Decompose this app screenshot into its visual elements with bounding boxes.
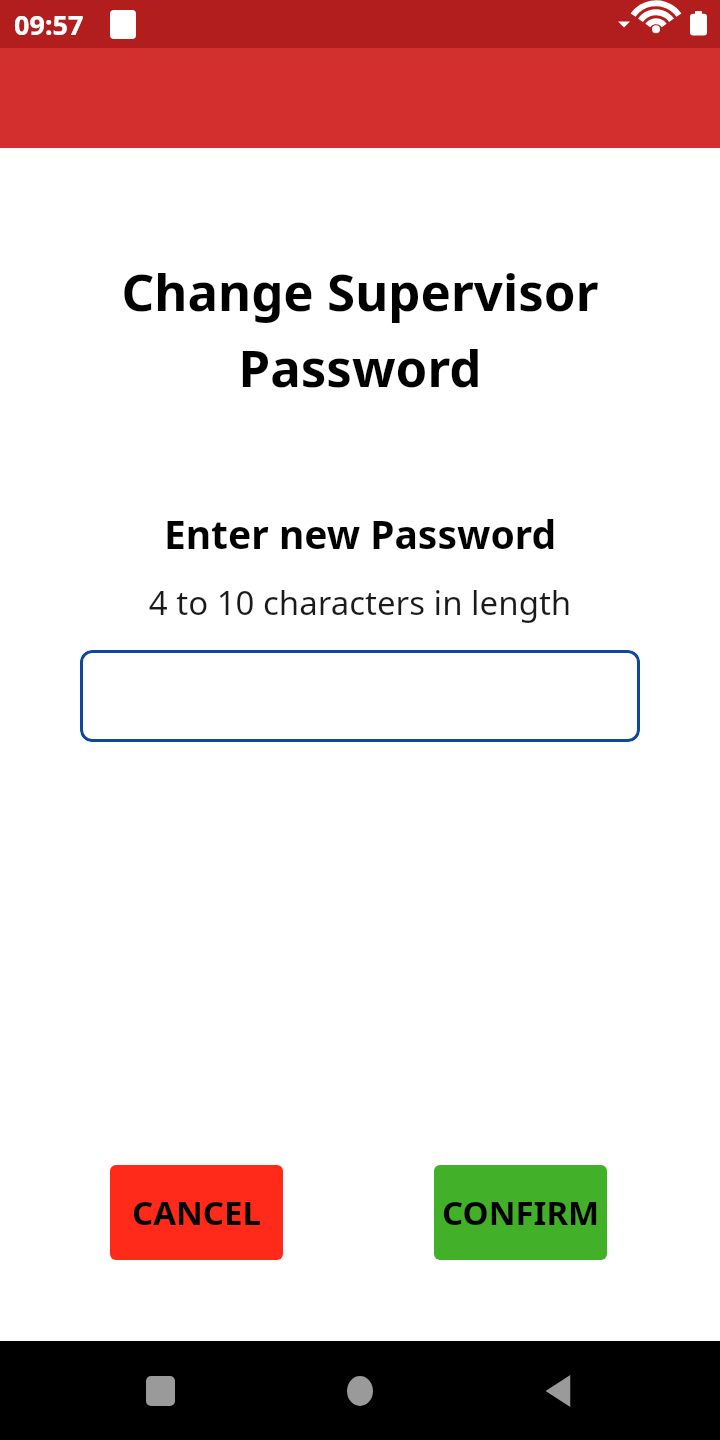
staticText: 09:57 (14, 6, 84, 43)
staticText: 4 to 10 characters in length (0, 580, 720, 625)
button[interactable]: New password field (80, 650, 640, 742)
button[interactable]: CANCEL (110, 1165, 283, 1260)
button[interactable]: Recents (120, 1351, 200, 1431)
button[interactable]: Back (520, 1351, 600, 1431)
staticText: CONFIRM (442, 1190, 600, 1235)
staticText: Change Supervisor Password (42, 256, 678, 402)
button[interactable]: CONFIRM (434, 1165, 607, 1260)
staticText: CANCEL (132, 1190, 261, 1235)
staticText: Enter new Password (0, 507, 720, 560)
button[interactable]: Home (320, 1351, 400, 1431)
